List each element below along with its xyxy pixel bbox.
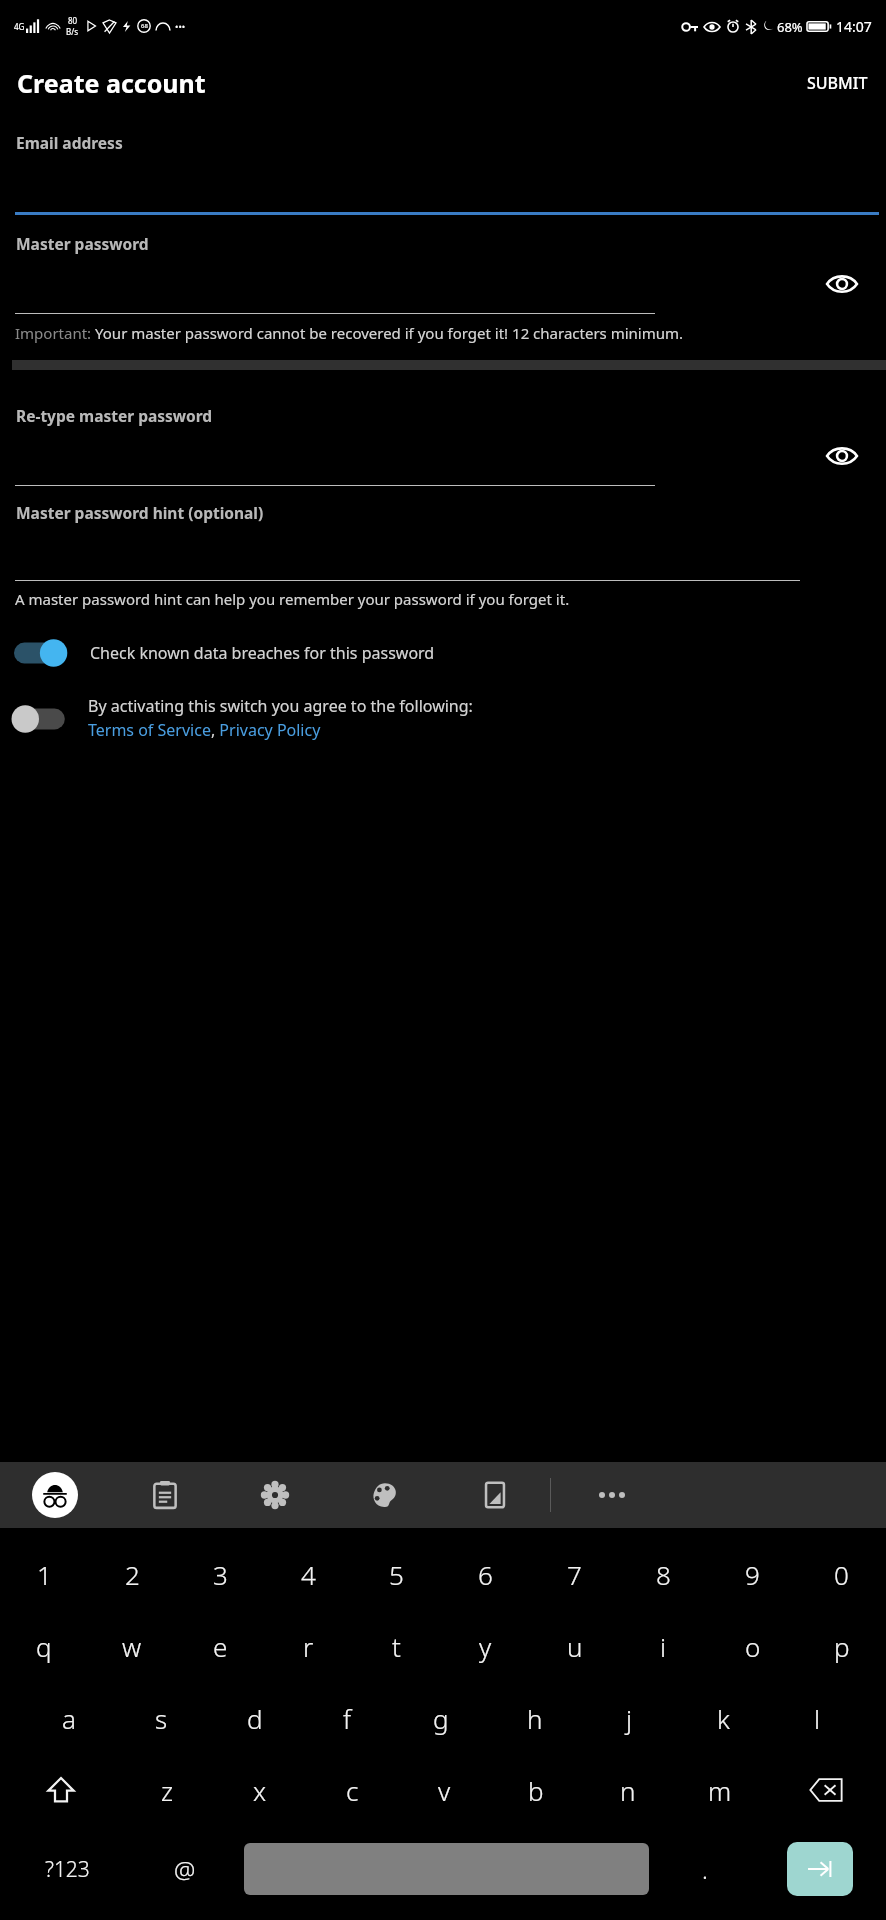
staticText: ?123 [45,1855,90,1884]
staticText: 68% [777,18,803,36]
button[interactable]: 3 [176,1538,264,1610]
button[interactable]: 6 [441,1538,530,1610]
staticText: Master password hint (optional) [16,502,264,523]
staticText: u [567,1629,583,1664]
staticText: p [834,1629,850,1664]
button[interactable]: 8 [619,1538,708,1610]
staticText: b [528,1773,544,1808]
staticText: Important: Your master password cannot b… [15,323,684,343]
button[interactable]: One-handed mode [440,1462,550,1528]
button[interactable]: l [770,1682,864,1754]
staticText: v [438,1773,451,1808]
staticText: Email address [16,132,123,153]
staticText: . [702,1853,708,1886]
button[interactable]: n [582,1754,674,1826]
button[interactable]: 5 [352,1538,441,1610]
staticText: 3 [213,1557,228,1592]
button[interactable]: 4 [264,1538,352,1610]
button[interactable]: c [306,1754,398,1826]
staticText: Terms of Service, Privacy Policy [88,719,321,741]
button[interactable]: . [657,1826,753,1912]
button[interactable]: Settings [220,1462,330,1528]
staticText: SUBMIT [807,72,868,94]
staticText: Master password [16,233,149,254]
staticText: r [303,1629,314,1664]
button[interactable]: Clipboard [110,1462,220,1528]
button[interactable]: Backspace [766,1754,886,1826]
staticText: Create account [17,66,206,100]
button[interactable]: y [441,1610,530,1682]
staticText: 4 [301,1557,316,1592]
button[interactable]: Enter [753,1826,886,1912]
button[interactable]: Check known data breaches for this passw… [14,633,76,673]
staticText: 6 [478,1557,493,1592]
button[interactable]: Accept terms of service and privacy poli… [14,699,76,739]
button[interactable]: Theme [330,1462,440,1528]
staticText: 8 [656,1557,671,1592]
button[interactable]: a [22,1682,115,1754]
button[interactable]: 1 [0,1538,88,1610]
button[interactable] [0,153,886,215]
button[interactable]: h [488,1682,582,1754]
button[interactable]: Incognito keyboard [0,1462,110,1528]
staticText: ••• [175,20,186,32]
button[interactable]: j [582,1682,676,1754]
staticText: 2 [125,1557,140,1592]
button[interactable]: Accept terms of service and privacy poli… [0,693,886,745]
staticText: e [213,1629,228,1664]
button[interactable]: @ [134,1826,235,1912]
staticText: a [62,1701,76,1736]
staticText: x [253,1773,267,1808]
staticText: 4G [14,21,25,32]
button[interactable]: SUBMIT [789,62,886,104]
button[interactable]: w [88,1610,176,1682]
button[interactable]: q [0,1610,88,1682]
button[interactable]: v [398,1754,490,1826]
button[interactable]: s [115,1682,208,1754]
button[interactable]: z [121,1754,214,1826]
button[interactable]: 9 [708,1538,797,1610]
button[interactable]: g [394,1682,488,1754]
staticText: i [660,1629,667,1664]
button[interactable]: o [708,1610,797,1682]
button[interactable]: i [619,1610,708,1682]
button[interactable]: d [208,1682,301,1754]
button[interactable]: 7 [530,1538,619,1610]
staticText: f [343,1701,352,1736]
button[interactable]: e [176,1610,264,1682]
button[interactable]: f [301,1682,394,1754]
button[interactable]: Shift [0,1754,121,1826]
staticText: Check known data breaches for this passw… [90,642,435,664]
button[interactable]: Show master password [816,258,868,310]
button[interactable]: Check known data breaches for this passw… [0,629,886,677]
button[interactable]: Space [235,1826,657,1912]
button[interactable]: More options [551,1462,886,1528]
staticText: d [247,1701,263,1736]
staticText: 0 [834,1557,849,1592]
staticText: s [155,1701,168,1736]
button[interactable]: 2 [88,1538,176,1610]
button[interactable]: k [676,1682,770,1754]
button[interactable]: b [490,1754,582,1826]
staticText: g [433,1701,449,1736]
staticText: m [708,1773,732,1808]
button[interactable]: 0 [797,1538,886,1610]
button[interactable]: t [352,1610,441,1682]
button[interactable]: Show re-typed master password [816,430,868,482]
staticText: t [392,1629,401,1664]
staticText: l [814,1701,821,1736]
button[interactable]: x [214,1754,306,1826]
staticText: w [122,1629,142,1664]
staticText: B/s [66,26,79,37]
staticText: n [620,1773,636,1808]
button[interactable]: m [674,1754,766,1826]
staticText: h [527,1701,543,1736]
staticText: y [479,1629,492,1664]
button[interactable]: p [797,1610,886,1682]
button[interactable]: r [264,1610,352,1682]
button[interactable]: u [530,1610,619,1682]
button[interactable]: ?123 [0,1826,134,1912]
